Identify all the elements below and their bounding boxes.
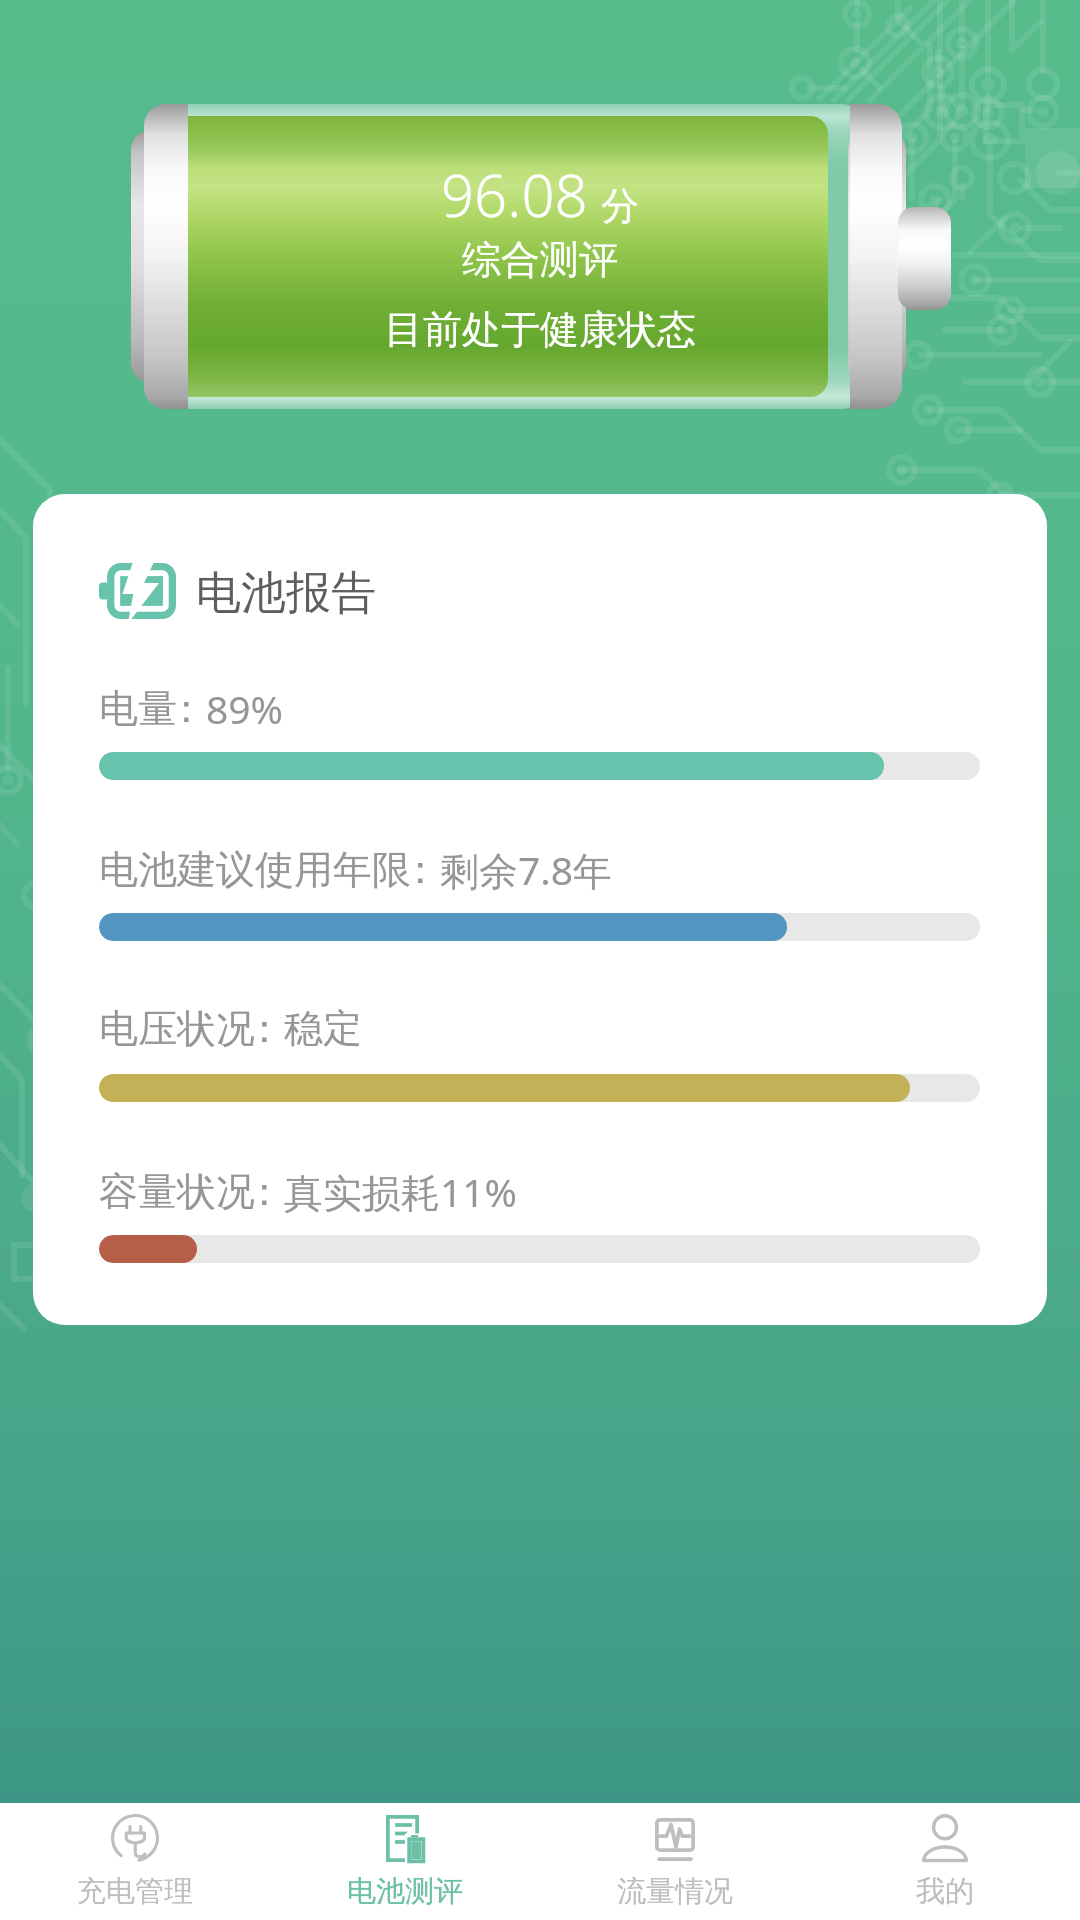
button[interactable]: 96.08 — [0, 104, 1080, 409]
staticText: ： — [401, 845, 440, 894]
staticText: 电池测评 — [347, 1873, 463, 1910]
staticText: ： — [245, 1004, 284, 1053]
staticText: 真实损耗11% — [284, 1165, 518, 1218]
button[interactable]: 我的 — [810, 1803, 1080, 1920]
staticText: 剩余7.8年 — [440, 843, 613, 896]
staticText: 96.08 — [441, 155, 588, 234]
staticText: 分 — [601, 182, 639, 230]
button[interactable]: 流量情况 — [540, 1803, 810, 1920]
staticText: 综合测评 — [462, 235, 618, 284]
staticText: 电池报告 — [196, 565, 376, 622]
staticText: ： — [167, 684, 206, 733]
staticText: 电压状况 — [99, 1004, 255, 1053]
staticText: 我的 — [916, 1873, 974, 1910]
staticText: 流量情况 — [617, 1873, 733, 1910]
button[interactable]: 充电管理 — [0, 1803, 270, 1920]
button[interactable]: 电池测评 — [270, 1803, 540, 1920]
staticText: 充电管理 — [77, 1873, 193, 1910]
other: 电池健康度 — [0, 0, 1080, 1920]
staticText: ： — [245, 1167, 284, 1216]
staticText: 89% — [206, 682, 284, 735]
staticText: 电池建议使用年限 — [99, 845, 411, 894]
staticText: 稳定 — [284, 1004, 362, 1053]
staticText: 电量 — [99, 684, 177, 733]
staticText: 目前处于健康状态 — [384, 305, 696, 354]
button[interactable]: 电池报告 — [99, 556, 377, 624]
staticText: 容量状况 — [99, 1167, 255, 1216]
